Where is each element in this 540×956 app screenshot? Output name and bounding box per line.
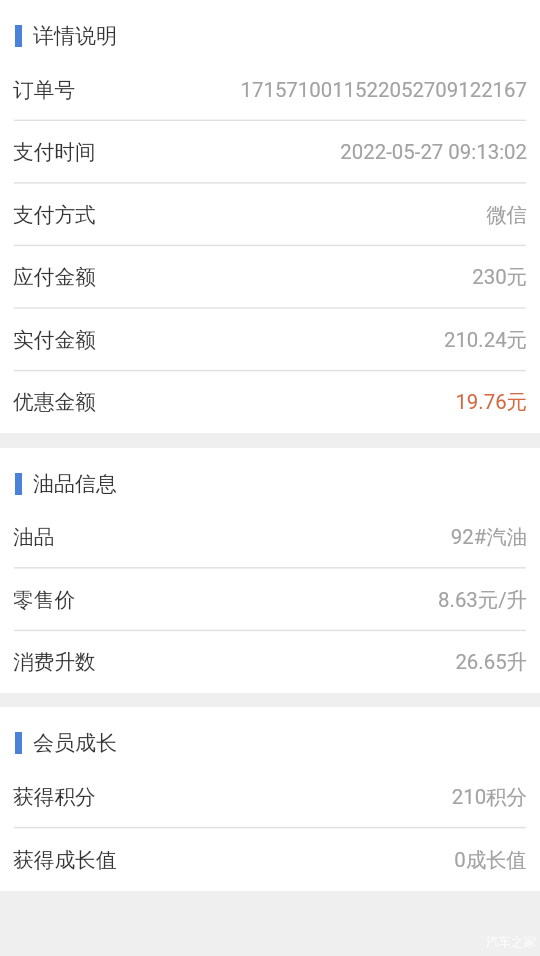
button[interactable]: 实付金额 (0, 308, 540, 371)
button[interactable]: 支付方式 (0, 183, 540, 246)
staticText: 19.76元 (104, 389, 527, 415)
staticText: 详情说明 (33, 23, 117, 49)
staticText: 210积分 (104, 784, 527, 810)
button[interactable]: 优惠金额 (0, 371, 540, 433)
button[interactable]: 零售价 (0, 568, 540, 631)
staticText: 支付时间 (13, 139, 96, 165)
button[interactable]: 获得积分 (0, 765, 540, 828)
staticText: 0成长值 (125, 847, 527, 873)
staticText: 汽车之家 (486, 934, 536, 950)
staticText: 支付方式 (13, 202, 96, 228)
staticText: 2022-05-27 09:13:02 (104, 140, 527, 164)
staticText: 210.24元 (104, 327, 527, 353)
button[interactable]: 订单号 (0, 58, 540, 121)
staticText: 微信 (104, 202, 527, 228)
staticText: 8.63元/升 (84, 587, 527, 613)
button[interactable]: 油品 (0, 505, 540, 568)
staticText: 实付金额 (13, 327, 96, 353)
staticText: 获得成长值 (13, 847, 117, 873)
button[interactable]: 支付时间 (0, 120, 540, 183)
staticText: 油品 (13, 524, 55, 550)
staticText: 获得积分 (13, 784, 96, 810)
button[interactable]: 消费升数 (0, 630, 540, 693)
staticText: 应付金额 (13, 264, 96, 290)
staticText: 消费升数 (13, 649, 96, 675)
staticText: 油品信息 (33, 471, 117, 497)
staticText: 1715710011522052709122167 (84, 78, 527, 102)
staticText: 92#汽油 (63, 524, 527, 550)
staticText: 26.65升 (104, 649, 527, 675)
staticText: 230元 (104, 264, 527, 290)
staticText: 订单号 (13, 77, 76, 103)
button[interactable]: 获得成长值 (0, 828, 540, 891)
staticText: 零售价 (13, 587, 76, 613)
button[interactable]: 应付金额 (0, 245, 540, 308)
staticText: 优惠金额 (13, 389, 96, 415)
staticText: 会员成长 (33, 730, 117, 756)
